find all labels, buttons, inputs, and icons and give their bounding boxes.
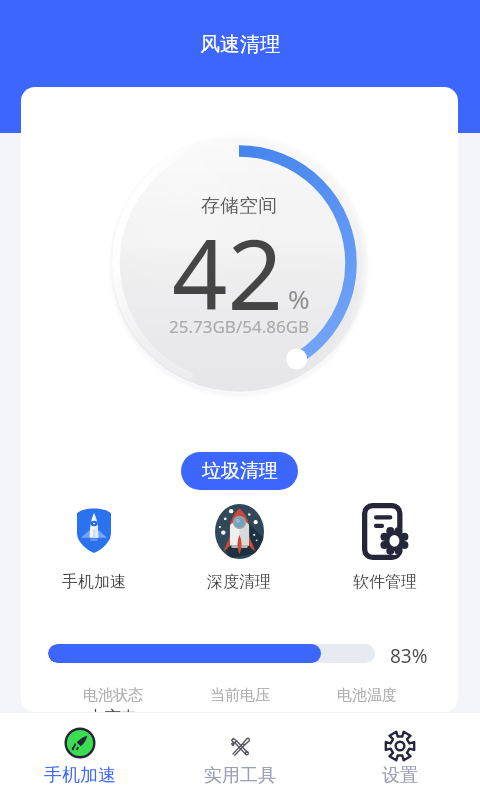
button[interactable]: 深度清理 (166, 503, 312, 592)
staticText: 软件管理 (353, 572, 417, 592)
other: 实用工具 (229, 735, 251, 757)
staticText: 当前电压 (210, 686, 270, 705)
button[interactable]: 设置 (320, 713, 480, 787)
staticText: 存储空间 (201, 194, 277, 218)
staticText: 83% (390, 643, 428, 669)
other: 设置 (384, 730, 416, 762)
staticText: 设置 (382, 764, 418, 787)
staticText: 深度清理 (207, 572, 271, 592)
staticText: 实用工具 (204, 764, 276, 787)
button[interactable]: 手机加速 (0, 713, 160, 787)
button[interactable]: 垃圾清理 (181, 452, 298, 490)
button[interactable]: 软件管理 (312, 503, 458, 592)
staticText: % (288, 281, 310, 316)
staticText: 手机加速 (62, 572, 126, 592)
button[interactable]: 实用工具 (160, 713, 320, 787)
staticText: 25.73GB/54.86GB (169, 315, 310, 338)
staticText: 电池状态 (83, 686, 143, 705)
staticText: 手机加速 (44, 764, 116, 787)
staticText: 42 (172, 206, 283, 338)
staticText: 风速清理 (200, 32, 280, 57)
staticText: 未充电 (87, 707, 138, 712)
staticText: 垃圾清理 (202, 459, 278, 483)
button[interactable]: 手机加速 (21, 503, 166, 592)
staticText: 电池温度 (337, 686, 397, 705)
other: 手机加速 (64, 727, 96, 759)
